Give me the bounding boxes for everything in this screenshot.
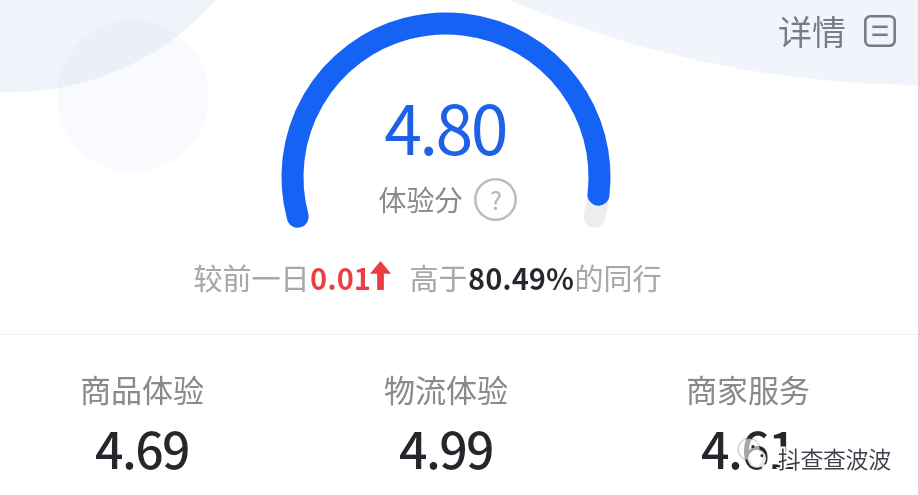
staticText: 较前一日 [193, 256, 310, 298]
staticText: 高于 [409, 256, 468, 298]
staticText: 4.69 [95, 411, 189, 483]
staticText: 4.80 [384, 76, 506, 174]
staticText: 物流体验 [384, 366, 508, 411]
staticText: 详情 [778, 6, 846, 55]
staticText: 4.99 [399, 411, 493, 483]
other: 详情 [864, 15, 896, 47]
staticText: 抖查查波波 [778, 441, 891, 474]
staticText: 商家服务 [686, 366, 810, 411]
staticText: 商品体验 [80, 366, 204, 411]
staticText: 0.01 [310, 256, 371, 298]
button[interactable]: 物流体验 [336, 366, 556, 483]
staticText: ? [490, 181, 502, 217]
button[interactable]: 详情 [770, 0, 904, 63]
button[interactable]: 商家服务 [638, 366, 858, 483]
staticText: 抖查查波波 [778, 441, 891, 474]
button[interactable]: 商品体验 [32, 366, 252, 483]
button[interactable]: 体验分说明 [474, 178, 517, 221]
staticText: 80.49% [468, 256, 574, 298]
staticText: 4.61 [701, 411, 795, 483]
staticText: 体验分 [378, 179, 463, 220]
staticText: 的同行 [574, 256, 662, 298]
